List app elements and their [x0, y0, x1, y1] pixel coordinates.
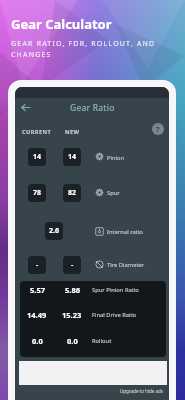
- staticText: 0.0: [67, 336, 78, 346]
- button[interactable]: -: [28, 256, 46, 274]
- staticText: 0.0: [32, 336, 43, 346]
- staticText: NEW: [65, 128, 80, 136]
- staticText: 82: [68, 188, 77, 198]
- button[interactable]: 78: [28, 184, 46, 202]
- staticText: Final Drive Ratio: [92, 311, 137, 319]
- staticText: 5.86: [65, 285, 80, 295]
- staticText: 78: [33, 188, 42, 198]
- button[interactable]: Upgrade to hide ads: [120, 387, 163, 395]
- button[interactable]: -: [63, 256, 81, 274]
- staticText: 5.57: [30, 285, 45, 295]
- staticText: Gear Ratio: [70, 102, 115, 114]
- staticText: CURRENT: [22, 128, 52, 136]
- button[interactable]: 14: [28, 148, 46, 166]
- button[interactable]: 14: [63, 148, 81, 166]
- staticText: 14: [68, 152, 77, 162]
- staticText: Tire Diameter: [107, 261, 145, 269]
- button[interactable]: Back: [17, 99, 33, 115]
- staticText: Gear Calculator: [11, 15, 112, 33]
- staticText: -: [36, 260, 39, 270]
- staticText: 14.49: [27, 310, 47, 320]
- staticText: Rollout: [92, 337, 112, 345]
- button[interactable]: 2.6: [45, 222, 63, 240]
- staticText: Spur: [107, 189, 120, 197]
- staticText: GEAR RATIO, FDR, ROLLOUT, AND CHANGES: [11, 39, 156, 59]
- staticText: ?: [156, 124, 160, 134]
- staticText: Internal ratio: [107, 228, 143, 236]
- staticText: -: [71, 260, 74, 270]
- staticText: Spur Pinion Ratio: [92, 286, 139, 294]
- button[interactable]: Help: [152, 123, 164, 135]
- button[interactable]: 82: [63, 184, 81, 202]
- staticText: Pinion: [107, 154, 125, 162]
- staticText: Upgrade to hide ads: [120, 388, 163, 394]
- staticText: 2.6: [49, 226, 59, 236]
- staticText: 14: [33, 152, 42, 162]
- staticText: 15.23: [62, 310, 82, 320]
